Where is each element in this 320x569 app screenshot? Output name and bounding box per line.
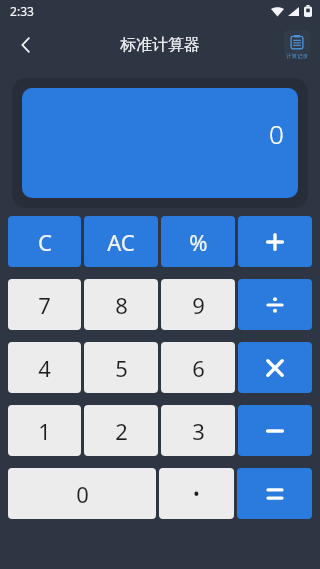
staticText: 2 — [115, 416, 128, 446]
staticText: 标准计算器 — [120, 35, 200, 55]
button[interactable]: 6 — [161, 342, 235, 393]
staticText: 2:33 — [10, 3, 34, 19]
staticText: 6 — [192, 353, 205, 383]
button[interactable]: 9 — [161, 279, 235, 330]
button[interactable]: 3 — [161, 405, 235, 456]
staticText: • — [193, 481, 200, 506]
button[interactable]: 8 — [84, 279, 158, 330]
staticText: 5 — [115, 353, 128, 383]
button[interactable]: % — [161, 216, 235, 267]
staticText: 1 — [38, 416, 51, 446]
staticText: 0 — [269, 116, 284, 151]
staticText: 3 — [192, 416, 205, 446]
staticText: 0 — [76, 479, 89, 509]
staticText: % — [189, 227, 208, 257]
button[interactable]: 7 — [8, 279, 81, 330]
staticText: 4 — [38, 353, 51, 383]
button[interactable]: Minus — [238, 405, 312, 456]
button[interactable]: Multiply — [238, 342, 312, 393]
button[interactable]: Back — [6, 25, 46, 65]
button[interactable]: Plus — [238, 216, 312, 267]
button[interactable]: • — [159, 468, 234, 519]
button[interactable]: 5 — [84, 342, 158, 393]
button[interactable]: 4 — [8, 342, 81, 393]
button[interactable]: 计算记录 — [282, 30, 312, 60]
button[interactable]: AC — [84, 216, 158, 267]
staticText: 7 — [38, 290, 51, 320]
button[interactable]: 2 — [84, 405, 158, 456]
button[interactable]: Equals — [237, 468, 312, 519]
staticText: C — [38, 227, 52, 257]
staticText: 计算记录 — [286, 53, 308, 60]
staticText: 8 — [115, 290, 128, 320]
staticText: AC — [107, 227, 135, 257]
button[interactable]: Divide — [238, 279, 312, 330]
button[interactable]: 1 — [8, 405, 81, 456]
button[interactable]: 0 — [8, 468, 156, 519]
button[interactable]: C — [8, 216, 81, 267]
staticText: 9 — [192, 290, 205, 320]
